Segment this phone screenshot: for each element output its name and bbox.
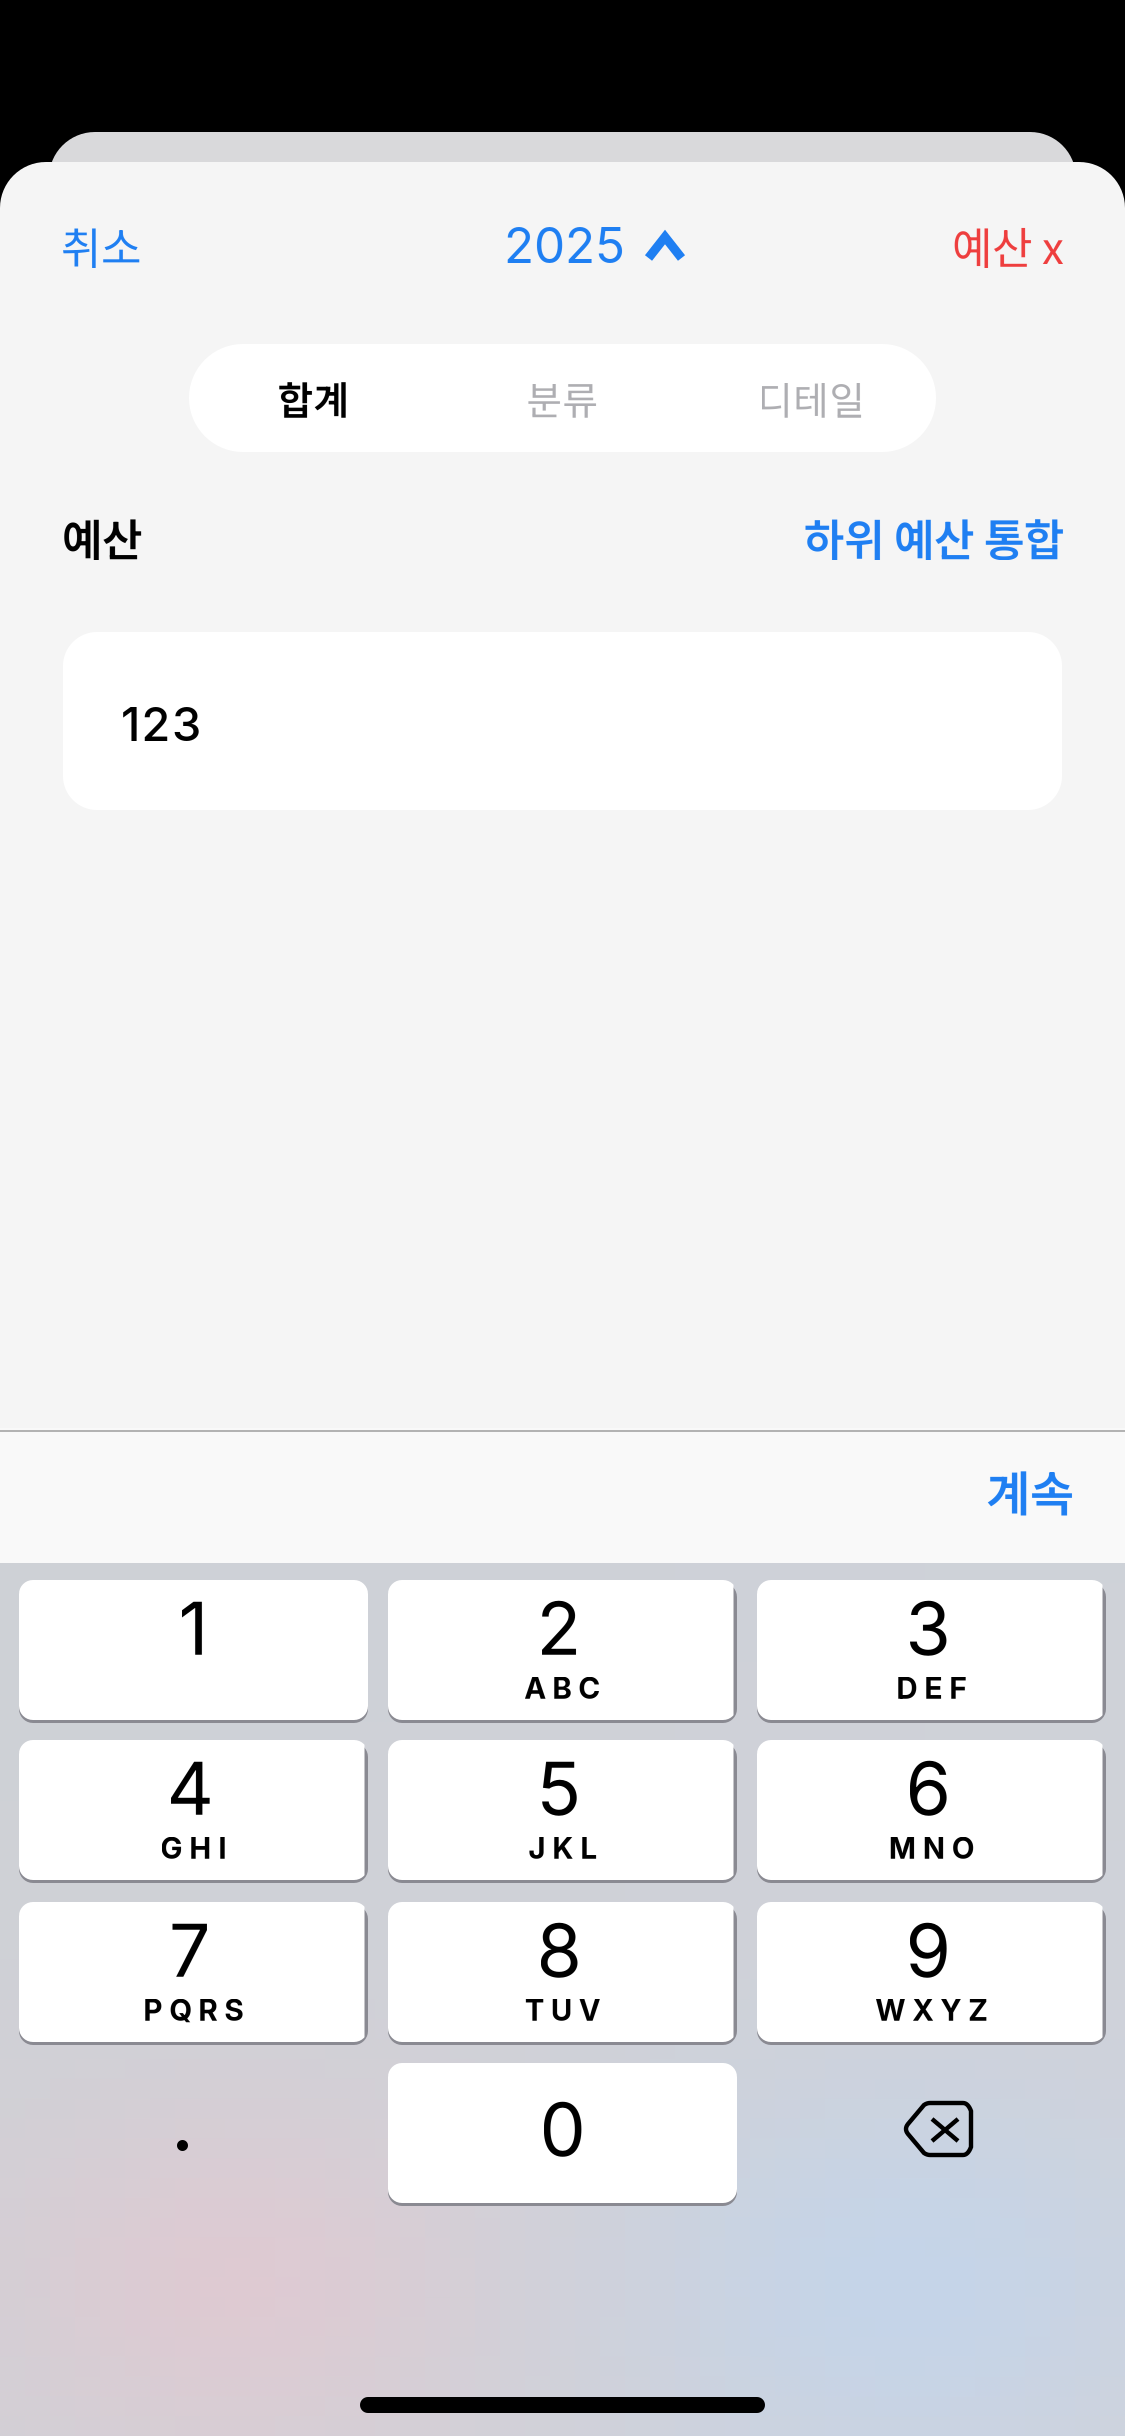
button[interactable]: 9	[757, 1902, 1106, 2045]
button[interactable]: 7	[19, 1902, 368, 2045]
button[interactable]: Delete	[757, 2063, 1106, 2203]
button[interactable]: 0	[388, 2063, 737, 2206]
staticText: 7	[169, 1906, 211, 1994]
staticText: 123	[121, 696, 201, 752]
staticText: 6	[905, 1744, 950, 1832]
button[interactable]: 계속	[874, 1428, 1074, 1553]
button[interactable]: 분류	[438, 344, 687, 452]
staticText: 분류	[526, 370, 598, 426]
button[interactable]: 2	[388, 1580, 737, 1723]
button[interactable]: 2025	[455, 210, 735, 280]
staticText: 8	[536, 1906, 581, 1994]
staticText: 계속	[986, 1456, 1074, 1525]
button[interactable]: 1	[19, 1580, 368, 1723]
staticText: PQRS	[143, 1992, 243, 2028]
staticText: 2	[536, 1584, 581, 1672]
button[interactable]: 6	[757, 1740, 1106, 1883]
staticText: MNO	[889, 1830, 974, 1866]
button[interactable]: 4	[19, 1740, 368, 1883]
button[interactable]: 8	[388, 1902, 737, 2045]
staticText: 취소	[61, 213, 141, 277]
staticText: ABC	[524, 1670, 600, 1706]
staticText: 하위 예산 통합	[804, 505, 1064, 569]
staticText: 9	[905, 1906, 950, 1994]
staticText: 5	[536, 1744, 581, 1832]
staticText: GHI	[160, 1830, 226, 1866]
staticText: 2025	[504, 215, 625, 275]
staticText: 예산 x	[952, 213, 1064, 277]
staticText: 디테일	[757, 370, 865, 426]
staticText: 0	[539, 2085, 585, 2173]
button[interactable]: Decimal point	[19, 2063, 368, 2203]
staticText: 3	[905, 1584, 950, 1672]
staticText: JKL	[528, 1830, 596, 1866]
staticText: WXYZ	[875, 1992, 987, 2028]
button[interactable]: 3	[757, 1580, 1106, 1723]
staticText: 1	[178, 1584, 208, 1672]
staticText: 합계	[277, 370, 349, 426]
staticText: TUV	[525, 1992, 600, 2028]
button[interactable]: 디테일	[687, 344, 936, 452]
button[interactable]: 합계	[189, 344, 438, 452]
button[interactable]: 예산 x	[864, 210, 1125, 280]
button[interactable]: 5	[388, 1740, 737, 1883]
button[interactable]: 하위 예산 통합	[744, 506, 1064, 568]
button[interactable]: 취소	[0, 210, 211, 280]
staticText: DEF	[896, 1670, 966, 1706]
staticText: 예산	[62, 505, 142, 569]
staticText: 4	[166, 1744, 213, 1832]
